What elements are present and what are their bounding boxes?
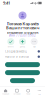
button[interactable]: Налоги и взносы — [5, 55, 40, 58]
staticText: Сводка за месяц — [5, 50, 27, 53]
staticText: ИНН 7743013902 — [9, 34, 36, 37]
staticText: Вашингтонович — [6, 25, 39, 30]
button[interactable] — [5, 62, 40, 67]
button[interactable]: Истории — [11, 89, 22, 95]
staticText: Ещё — [38, 93, 41, 95]
button[interactable]: Ещё — [34, 89, 45, 95]
button[interactable]: Ещё — [28, 38, 40, 48]
button[interactable] — [5, 78, 40, 83]
staticText: Налоги и взносы — [5, 55, 29, 58]
staticText: Оплата — [8, 46, 14, 48]
button[interactable]: Главная — [0, 89, 11, 95]
staticText: Чеки — [26, 93, 30, 95]
button[interactable] — [5, 70, 40, 75]
staticText: Истории — [13, 93, 20, 95]
staticText: 9:41 — [3, 0, 10, 6]
staticText: Доход — [20, 46, 25, 48]
button[interactable]: Доход — [17, 38, 28, 48]
button[interactable]: Сводка за месяц — [5, 50, 40, 53]
staticText: Потоков Королёв — [6, 21, 38, 26]
staticText: Ещё — [33, 46, 36, 48]
staticText: Главная — [2, 93, 9, 95]
staticText: Внештатный сотрудник — [7, 31, 38, 34]
button[interactable]: Чеки — [22, 89, 34, 95]
button[interactable]: Оплата — [5, 38, 17, 48]
